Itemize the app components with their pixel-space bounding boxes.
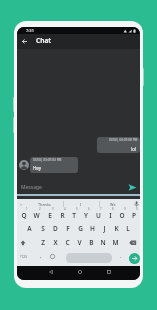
staticText: V — [77, 238, 82, 247]
staticText: N — [100, 238, 106, 247]
button[interactable] — [129, 240, 137, 246]
staticText: 5 — [76, 207, 78, 211]
staticText: Chat — [36, 36, 52, 45]
staticText: 3 — [52, 207, 54, 211]
button[interactable]: Thanks — [38, 202, 51, 207]
button[interactable]: W — [30, 209, 43, 222]
staticText: C — [65, 238, 70, 247]
staticText: T — [72, 211, 76, 220]
staticText: Y — [84, 211, 88, 220]
button[interactable] — [66, 253, 112, 263]
staticText: Message — [21, 184, 42, 191]
staticText: , — [40, 253, 42, 260]
button[interactable]: We — [110, 202, 116, 207]
staticText: G — [78, 224, 83, 233]
staticText: . — [120, 253, 122, 260]
staticText: 03/03, 03:07:03 PM — [33, 158, 62, 162]
button[interactable]: M — [109, 236, 121, 249]
staticText: 1 — [26, 207, 28, 211]
button[interactable]: ?123 — [20, 255, 27, 259]
staticText: 03/03, 03:07:08 PM — [109, 138, 138, 142]
staticText: 6 — [88, 207, 90, 211]
button[interactable]: F — [62, 222, 74, 235]
staticText: D — [53, 224, 58, 233]
staticText: 9 — [124, 207, 126, 211]
button[interactable]: C — [61, 236, 73, 249]
staticText: Q — [21, 211, 27, 220]
staticText: S — [41, 224, 45, 233]
staticText: P — [132, 211, 136, 220]
staticText: I — [109, 211, 112, 220]
staticText: A — [27, 224, 32, 233]
staticText: U — [96, 211, 101, 220]
button[interactable] — [107, 270, 111, 274]
button[interactable]: H — [86, 222, 98, 235]
staticText: K — [114, 224, 119, 233]
button[interactable] — [49, 270, 53, 274]
button[interactable]: S — [36, 222, 49, 235]
staticText: B — [89, 238, 94, 247]
staticText: 8 — [112, 207, 114, 211]
button[interactable] — [22, 39, 27, 44]
button[interactable] — [78, 270, 82, 274]
button[interactable]: N — [97, 236, 109, 249]
staticText: lol — [131, 146, 137, 152]
button[interactable]: T — [68, 209, 80, 222]
button[interactable]: Z — [36, 236, 49, 249]
button[interactable]: V — [73, 236, 85, 249]
button[interactable]: P — [128, 209, 140, 222]
staticText: 7:31 — [26, 28, 34, 33]
button[interactable]: R — [56, 209, 68, 222]
button[interactable]: I — [80, 202, 82, 207]
staticText: 4 — [64, 207, 66, 211]
button[interactable]: Y — [80, 209, 92, 222]
staticText: F — [66, 224, 70, 233]
staticText: H — [90, 224, 95, 233]
staticText: O — [119, 211, 125, 220]
staticText: X — [53, 238, 58, 247]
button[interactable]: X — [49, 236, 61, 249]
button[interactable]: K — [110, 222, 122, 235]
staticText: 2 — [39, 207, 41, 211]
button[interactable]: B — [85, 236, 97, 249]
staticText: M — [112, 238, 119, 247]
staticText: Z — [41, 238, 45, 247]
staticText: > — [20, 202, 23, 207]
staticText: J — [103, 224, 106, 233]
button[interactable]: E — [43, 209, 56, 222]
button[interactable]: A — [23, 222, 36, 235]
staticText: R — [60, 211, 65, 220]
button[interactable]: J — [98, 222, 110, 235]
button[interactable]: U — [92, 209, 104, 222]
button[interactable]: G — [74, 222, 86, 235]
staticText: 0 — [136, 207, 138, 211]
button[interactable]: O — [116, 209, 128, 222]
staticText: W — [33, 211, 40, 220]
button[interactable] — [129, 253, 140, 264]
button[interactable]: D — [49, 222, 62, 235]
button[interactable]: L — [122, 222, 134, 235]
button[interactable]: I — [104, 209, 116, 222]
button[interactable] — [20, 240, 26, 246]
staticText: L — [126, 224, 130, 233]
button[interactable]: Q — [17, 209, 30, 222]
button[interactable] — [134, 201, 139, 207]
button[interactable] — [128, 184, 137, 191]
staticText: E — [48, 211, 52, 220]
staticText: 7 — [100, 207, 102, 211]
staticText: Hey — [33, 165, 42, 171]
